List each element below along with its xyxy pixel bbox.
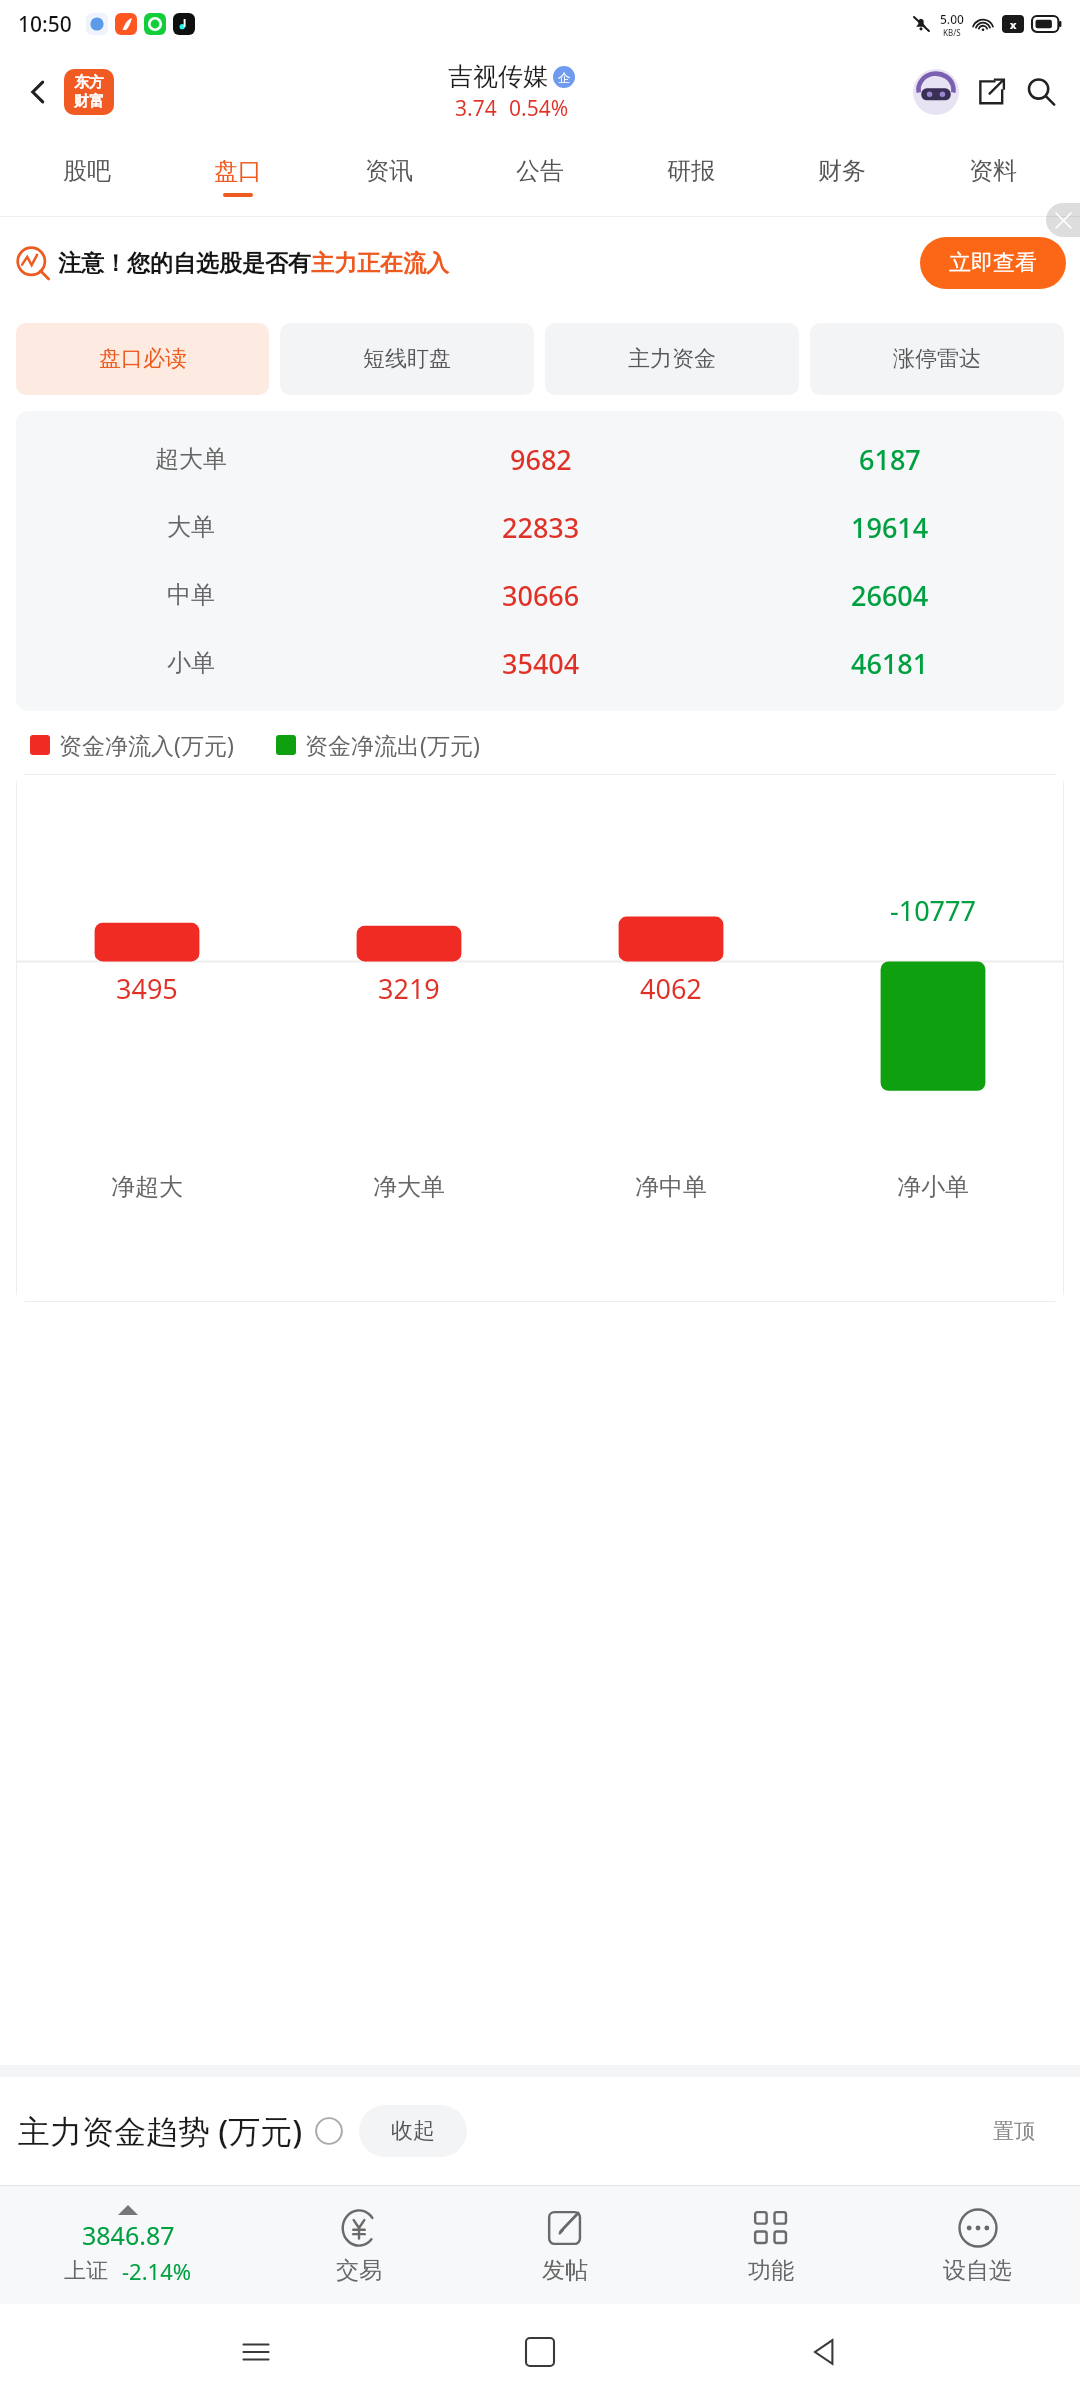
staticText: 研报 <box>667 156 715 186</box>
button[interactable]: 置顶 <box>966 2106 1062 2156</box>
staticText: KB/S <box>943 27 961 38</box>
staticText: 3219 <box>378 970 440 1007</box>
button[interactable]: 盘口必读 <box>16 323 269 395</box>
button[interactable]: 财务 <box>766 136 917 216</box>
staticText: 4062 <box>640 970 702 1007</box>
button[interactable]: 资料 <box>917 136 1068 216</box>
staticText: 发帖 <box>542 2256 588 2285</box>
staticText: 10:50 <box>18 10 72 39</box>
staticText: 净大单 <box>373 1172 445 1202</box>
staticText: 主力资金趋势 (万元) <box>18 2109 303 2153</box>
staticText: 6187 <box>859 441 921 478</box>
staticText: 上证 <box>64 2257 108 2285</box>
button[interactable]: 盘口 <box>162 136 313 216</box>
staticText: 置顶 <box>993 2118 1035 2144</box>
staticText: 小单 <box>167 648 215 678</box>
button[interactable]: 交易 <box>256 2186 462 2304</box>
staticText: 财务 <box>818 156 866 186</box>
button[interactable]: 主力资金 <box>545 323 799 395</box>
button[interactable]: 短线盯盘 <box>280 323 534 395</box>
staticText: 企 <box>558 70 570 85</box>
button[interactable]: 股吧 <box>12 136 162 216</box>
staticText: -2.14% <box>122 2256 192 2286</box>
staticText: 涨停雷达 <box>893 345 981 373</box>
staticText: 吉视传媒 <box>448 61 548 92</box>
button[interactable]: 3846.87 <box>0 2186 256 2304</box>
staticText: 资金净流出(万元) <box>305 729 480 760</box>
staticText: 盘口必读 <box>99 345 187 373</box>
button[interactable]: 研报 <box>615 136 766 216</box>
button[interactable]: 公告 <box>464 136 615 216</box>
staticText: 19614 <box>851 509 929 546</box>
button[interactable]: 功能 <box>668 2186 874 2304</box>
staticText: 收起 <box>391 2117 435 2145</box>
button[interactable]: Search <box>1018 69 1064 115</box>
staticText: 超大单 <box>155 444 227 474</box>
staticText: 主力资金 <box>628 345 716 373</box>
staticText: 35404 <box>502 645 580 682</box>
staticText: 资料 <box>969 156 1017 186</box>
staticText: 东方 <box>74 73 104 92</box>
button[interactable]: Menu <box>228 2324 284 2380</box>
staticText: -10777 <box>890 892 976 929</box>
staticText: 0.54% <box>509 94 569 123</box>
staticText: 盘口 <box>214 156 262 186</box>
staticText: 立即查看 <box>949 249 1037 277</box>
staticText: 设自选 <box>943 2256 1012 2285</box>
staticText: 资金净流入(万元) <box>59 729 234 760</box>
staticText: 46181 <box>851 645 929 682</box>
staticText: 资讯 <box>365 156 413 186</box>
staticText: 公告 <box>516 156 564 186</box>
staticText: x <box>1010 17 1017 32</box>
staticText: 30666 <box>502 577 580 614</box>
button[interactable]: Home <box>512 2324 568 2380</box>
staticText: 财富 <box>74 92 104 111</box>
button[interactable]: Back <box>796 2324 852 2380</box>
staticText: 9682 <box>510 441 572 478</box>
button[interactable]: 涨停雷达 <box>810 323 1064 395</box>
button[interactable]: 收起 <box>359 2105 467 2157</box>
staticText: 短线盯盘 <box>363 345 451 373</box>
staticText: 股吧 <box>63 156 111 186</box>
button[interactable]: 设自选 <box>874 2186 1080 2304</box>
staticText: 大单 <box>167 512 215 542</box>
staticText: 净超大 <box>111 1172 183 1202</box>
button[interactable]: 立即查看 <box>920 237 1066 289</box>
staticText: 3.74 <box>455 94 497 123</box>
staticText: 26604 <box>851 577 929 614</box>
staticText: 注意！您的自选股是否有 <box>58 249 311 278</box>
staticText: 净中单 <box>635 1172 707 1202</box>
staticText: 功能 <box>748 2256 794 2285</box>
staticText: 中单 <box>167 580 215 610</box>
button[interactable]: East Money <box>64 69 114 115</box>
button[interactable]: Profile <box>910 66 962 118</box>
button[interactable]: Share <box>968 69 1014 115</box>
staticText: 主力正在流入 <box>311 249 449 278</box>
staticText: 22833 <box>502 509 580 546</box>
button[interactable]: Close <box>1046 203 1080 237</box>
staticText: 3495 <box>116 970 178 1007</box>
staticText: 3846.87 <box>82 2218 175 2252</box>
button[interactable]: Back <box>16 70 60 114</box>
staticText: 净小单 <box>897 1172 969 1202</box>
staticText: 交易 <box>336 2256 382 2285</box>
button[interactable]: 发帖 <box>462 2186 668 2304</box>
button[interactable]: 资讯 <box>313 136 464 216</box>
staticText: 5.00 <box>940 11 964 27</box>
